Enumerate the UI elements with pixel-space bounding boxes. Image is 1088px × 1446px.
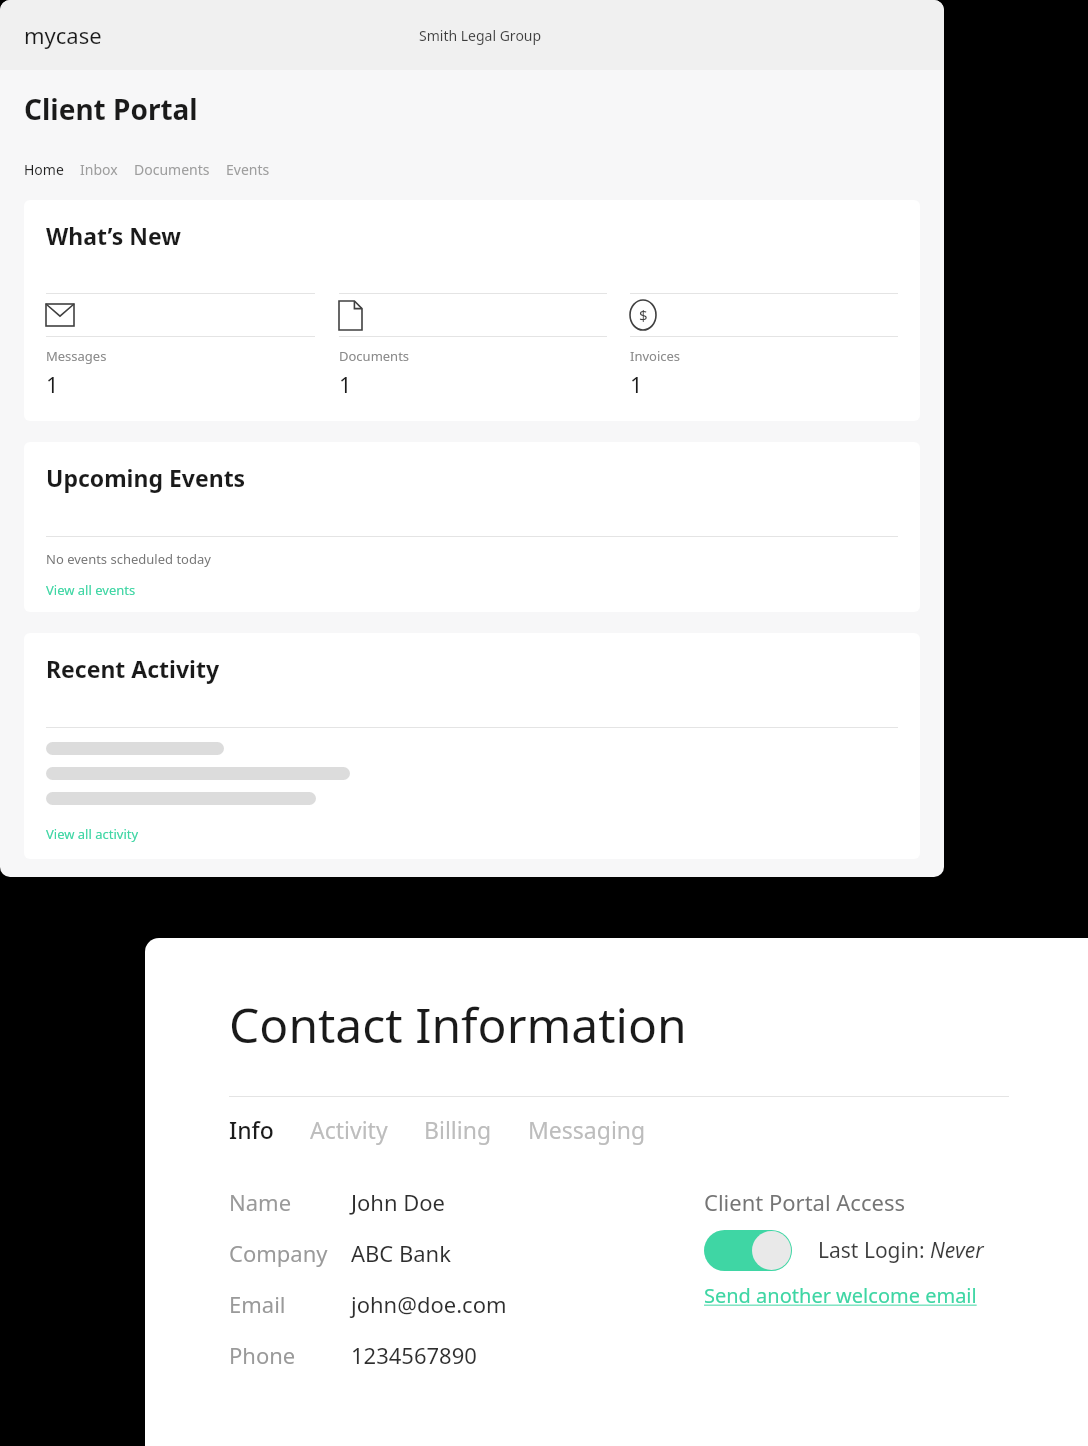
button[interactable]: Events <box>226 160 270 179</box>
staticText: Home <box>24 160 64 179</box>
staticText: Client Portal <box>24 90 198 128</box>
button[interactable]: Billing <box>424 1114 492 1145</box>
button[interactable]: Activity <box>310 1114 388 1145</box>
button[interactable]: Info <box>229 1114 274 1145</box>
staticText: Invoices <box>630 347 681 365</box>
button[interactable]: View all activity <box>46 825 139 843</box>
staticText: Documents <box>339 347 410 365</box>
staticText: ABC Bank <box>351 1238 451 1268</box>
button[interactable]: Documents <box>339 293 607 399</box>
button[interactable]: $ <box>630 293 898 399</box>
button[interactable]: Documents <box>134 160 210 179</box>
staticText: $ <box>639 305 648 325</box>
button[interactable]: Home <box>24 160 64 179</box>
staticText: Name <box>229 1187 292 1217</box>
staticText: Inbox <box>80 160 118 179</box>
staticText: Activity <box>310 1114 388 1145</box>
staticText: Messages <box>46 347 107 365</box>
staticText: What’s New <box>46 220 181 251</box>
button[interactable]: Messaging <box>528 1114 646 1145</box>
staticText: john@doe.com <box>351 1289 507 1319</box>
staticText: Company <box>229 1238 328 1268</box>
staticText: Client Portal Access <box>704 1187 905 1217</box>
staticText: No events scheduled today <box>46 550 211 568</box>
staticText: Send another welcome email <box>704 1282 977 1309</box>
staticText: Upcoming Events <box>46 462 246 493</box>
staticText: 1 <box>46 369 59 399</box>
staticText: Events <box>226 160 270 179</box>
button[interactable]: Messages <box>46 293 315 399</box>
staticText: Recent Activity <box>46 653 220 684</box>
staticText: Documents <box>134 160 210 179</box>
button[interactable]: Inbox <box>80 160 118 179</box>
staticText: 1 <box>630 369 643 399</box>
button[interactable]: Client portal access toggle, on <box>704 1230 792 1271</box>
staticText: 1 <box>339 369 352 399</box>
button[interactable]: mycase <box>24 20 102 50</box>
staticText: John Doe <box>351 1187 446 1217</box>
staticText: Email <box>229 1289 286 1319</box>
button[interactable]: View all events <box>46 581 136 599</box>
staticText: Billing <box>424 1114 492 1145</box>
staticText: 1234567890 <box>351 1340 477 1370</box>
staticText: Info <box>229 1114 274 1145</box>
staticText: View all activity <box>46 825 139 843</box>
staticText: View all events <box>46 581 136 599</box>
staticText: Last Login: <box>818 1236 930 1265</box>
button[interactable]: Send another welcome email <box>704 1282 977 1309</box>
staticText: Phone <box>229 1340 296 1370</box>
staticText: Never <box>930 1236 984 1265</box>
staticText: Contact Information <box>229 992 687 1057</box>
staticText: Messaging <box>528 1114 646 1145</box>
staticText: Smith Legal Group <box>419 26 542 45</box>
